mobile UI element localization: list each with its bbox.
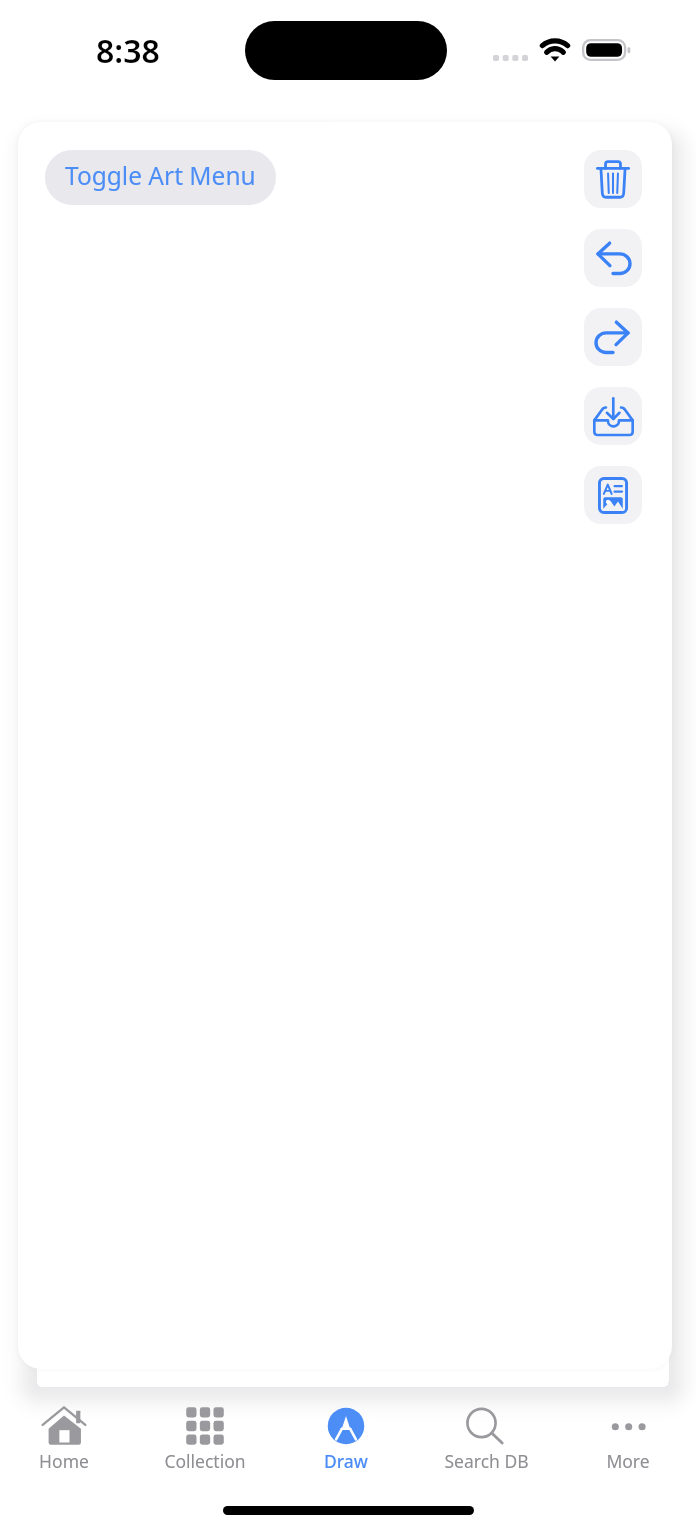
- button[interactable]: Search DB: [416, 1404, 557, 1473]
- button[interactable]: Collection: [134, 1404, 275, 1473]
- staticText: Search DB: [444, 1449, 529, 1473]
- button[interactable]: More: [557, 1404, 696, 1473]
- button[interactable]: Home: [0, 1404, 134, 1473]
- button[interactable]: Toggle Art Menu: [45, 150, 276, 205]
- button[interactable]: Undo: [584, 229, 642, 287]
- staticText: Toggle Art Menu: [65, 159, 256, 192]
- button[interactable]: Draw: [275, 1404, 416, 1473]
- button[interactable]: Save to gallery: [584, 387, 642, 445]
- button[interactable]: Redo: [584, 308, 642, 366]
- staticText: 8:38: [96, 29, 160, 73]
- staticText: Home: [39, 1449, 89, 1473]
- staticText: Collection: [164, 1449, 246, 1473]
- button[interactable]: Delete: [584, 150, 642, 208]
- staticText: Draw: [324, 1449, 368, 1473]
- button[interactable]: Document: [584, 466, 642, 524]
- staticText: More: [606, 1449, 650, 1473]
